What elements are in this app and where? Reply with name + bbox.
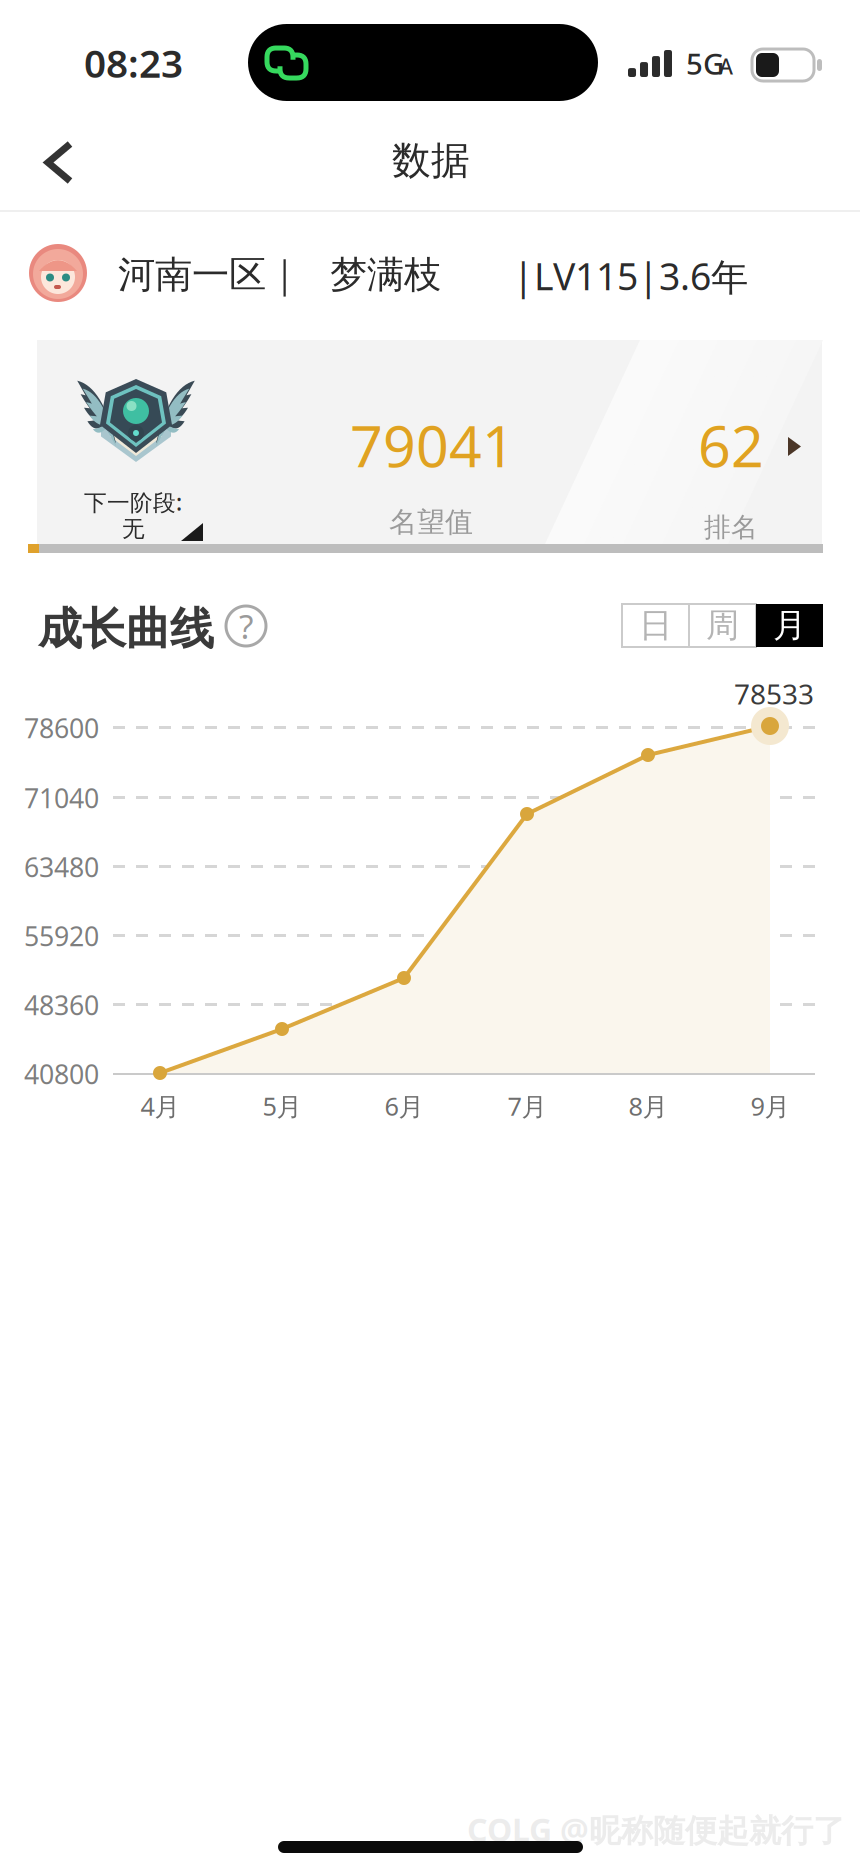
staticText: 7月 [507, 1089, 546, 1123]
staticText: 河南一区｜ [118, 252, 303, 298]
staticText: 78533 [734, 675, 814, 712]
button[interactable]: 周 [689, 604, 756, 647]
staticText: 成长曲线 [38, 602, 214, 656]
staticText: 5月 [262, 1089, 301, 1123]
staticText: 排名 [704, 511, 758, 544]
staticText: |LV115|3.6年 [513, 251, 748, 301]
staticText: 62 [698, 407, 764, 483]
staticText: 6月 [384, 1089, 423, 1123]
staticText: 40800 [24, 1056, 99, 1092]
button[interactable]: 日 [622, 604, 689, 647]
button[interactable]: Help [224, 604, 268, 648]
staticText: 数据 [392, 137, 470, 184]
staticText: 63480 [24, 849, 99, 885]
staticText: COLG @昵称随便起就行了 [467, 1808, 845, 1851]
staticText: 48360 [24, 987, 99, 1023]
staticText: 月 [773, 605, 806, 646]
staticText: 名望值 [389, 505, 473, 539]
staticText: 08:23 [84, 37, 183, 88]
staticText: 5G [686, 44, 724, 83]
staticText: 8月 [628, 1089, 667, 1123]
staticText: A [719, 52, 733, 80]
staticText: 日 [639, 605, 672, 646]
staticText: 9月 [750, 1089, 789, 1123]
staticText: ? [239, 604, 253, 648]
staticText: 78600 [24, 710, 99, 746]
staticText: 55920 [24, 918, 99, 954]
staticText: 79041 [350, 407, 515, 483]
staticText: 周 [706, 605, 739, 646]
button[interactable]: 月 [756, 604, 823, 647]
staticText: 71040 [24, 780, 99, 816]
staticText: 梦满枝 [330, 252, 441, 298]
staticText: 4月 [140, 1089, 179, 1123]
staticText: 无 [122, 515, 145, 543]
staticText: 下一阶段: [84, 487, 182, 517]
button[interactable]: Back [0, 120, 100, 210]
